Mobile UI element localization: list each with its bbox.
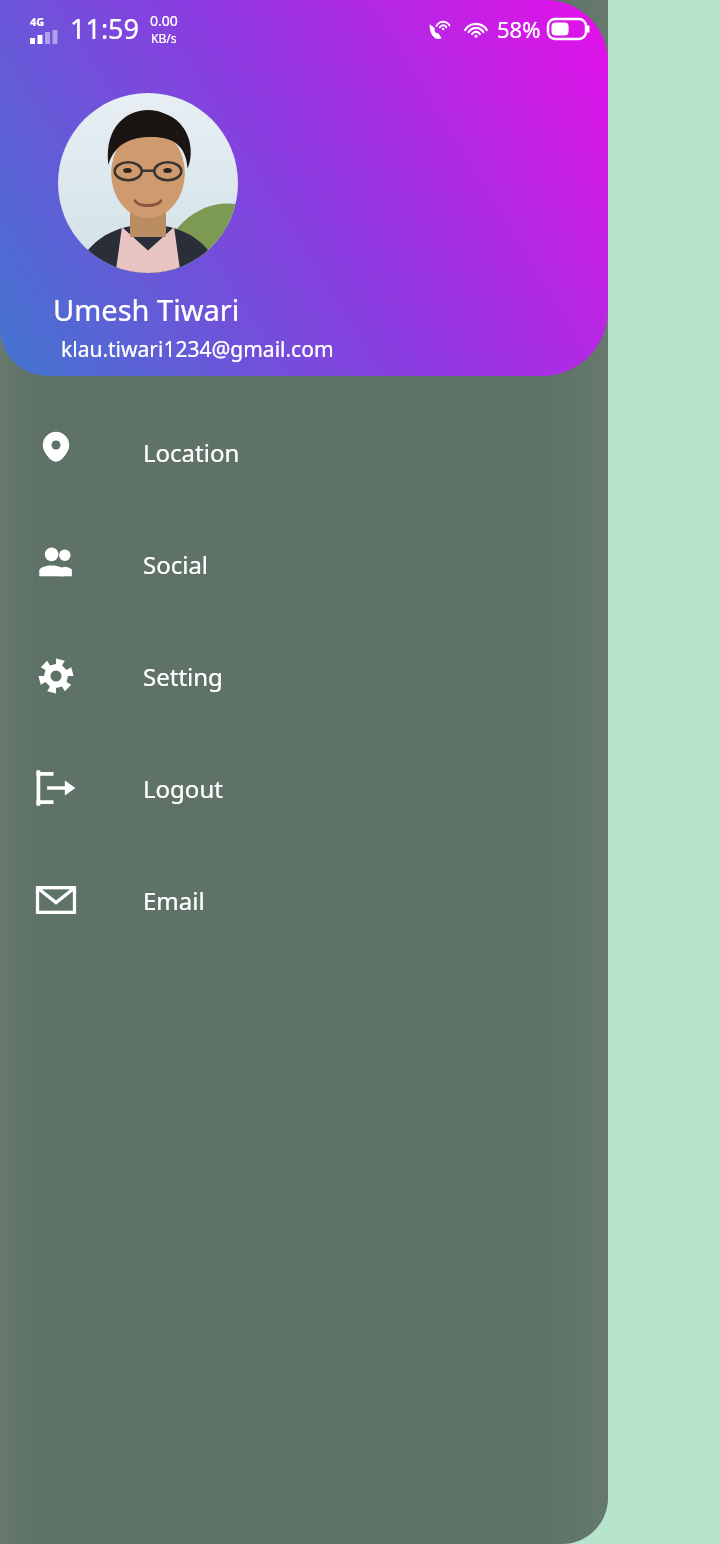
staticText: Email	[143, 884, 205, 917]
staticText: 11:59	[70, 10, 140, 47]
staticText: KB/s	[151, 30, 177, 46]
staticText: Social	[143, 548, 209, 581]
staticText: 4G	[30, 14, 45, 29]
staticText: 0.00	[150, 11, 178, 30]
staticText: Umesh Tiwari	[53, 290, 240, 329]
staticText: Location	[143, 436, 240, 469]
button[interactable]: Logout	[0, 732, 608, 844]
staticText: klau.tiwari1234@gmail.com	[61, 335, 334, 364]
staticText: 58%	[497, 14, 541, 44]
button[interactable]: Location	[0, 396, 608, 508]
button[interactable]: Profile photo	[58, 93, 238, 273]
button[interactable]: Social	[0, 508, 608, 620]
staticText: Setting	[143, 660, 223, 693]
button[interactable]: Setting	[0, 620, 608, 732]
button[interactable]: Email	[0, 844, 608, 956]
staticText: Logout	[143, 772, 223, 805]
